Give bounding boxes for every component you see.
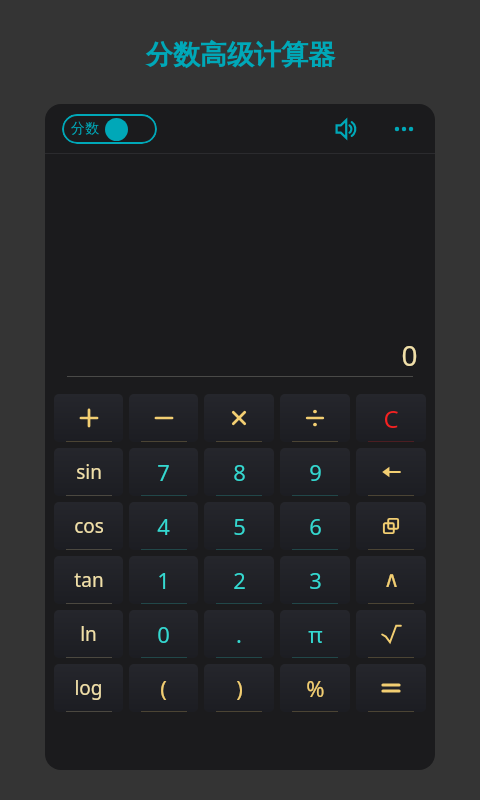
button[interactable]: copy — [356, 502, 426, 550]
button[interactable]: ∧ — [356, 556, 426, 604]
button[interactable]: . — [204, 610, 274, 658]
button[interactable]: 5 — [204, 502, 274, 550]
button[interactable]: sqrt — [356, 610, 426, 658]
button[interactable]: 0 — [129, 610, 198, 658]
staticText: . — [236, 619, 242, 649]
staticText: 5 — [233, 511, 246, 541]
staticText: 4 — [157, 511, 170, 541]
staticText: 9 — [309, 457, 322, 487]
button[interactable]: log — [54, 664, 123, 712]
button[interactable]: sin — [54, 448, 123, 496]
button[interactable]: 9 — [280, 448, 350, 496]
staticText: ln — [80, 621, 97, 647]
button[interactable]: equals — [356, 664, 426, 712]
staticText: log — [74, 675, 103, 701]
staticText: ∧ — [383, 567, 400, 593]
staticText: % — [306, 673, 325, 703]
staticText: cos — [74, 513, 104, 539]
staticText: 8 — [233, 457, 246, 487]
staticText: 0 — [157, 619, 170, 649]
button[interactable]: C — [356, 394, 426, 442]
staticText: ( — [160, 673, 167, 703]
button[interactable]: 8 — [204, 448, 274, 496]
button[interactable]: 分数 — [62, 114, 157, 144]
staticText: π — [308, 619, 323, 649]
staticText: ) — [236, 673, 243, 703]
button[interactable]: π — [280, 610, 350, 658]
button[interactable]: % — [280, 664, 350, 712]
staticText: 7 — [157, 457, 170, 487]
button[interactable]: minus — [129, 394, 198, 442]
staticText: 0 — [401, 336, 418, 374]
button[interactable]: ) — [204, 664, 274, 712]
staticText: C — [383, 402, 399, 435]
button[interactable]: ( — [129, 664, 198, 712]
button[interactable]: divide — [280, 394, 350, 442]
button[interactable]: 4 — [129, 502, 198, 550]
button[interactable]: cos — [54, 502, 123, 550]
button[interactable]: ln — [54, 610, 123, 658]
button[interactable]: 1 — [129, 556, 198, 604]
staticText: 分数 — [71, 120, 99, 138]
button[interactable]: Sound — [330, 112, 364, 146]
staticText: 6 — [309, 511, 322, 541]
button[interactable]: More options — [387, 112, 421, 146]
button[interactable]: tan — [54, 556, 123, 604]
button[interactable]: times — [204, 394, 274, 442]
staticText: 分数高级计算器 — [146, 38, 335, 72]
button[interactable]: back — [356, 448, 426, 496]
button[interactable]: 2 — [204, 556, 274, 604]
button[interactable]: plus — [54, 394, 123, 442]
button[interactable]: 7 — [129, 448, 198, 496]
staticText: tan — [74, 567, 104, 593]
button[interactable]: 6 — [280, 502, 350, 550]
staticText: 2 — [233, 565, 246, 595]
button[interactable]: 3 — [280, 556, 350, 604]
staticText: 3 — [309, 565, 322, 595]
staticText: sin — [76, 459, 102, 485]
staticText: 1 — [157, 565, 170, 595]
